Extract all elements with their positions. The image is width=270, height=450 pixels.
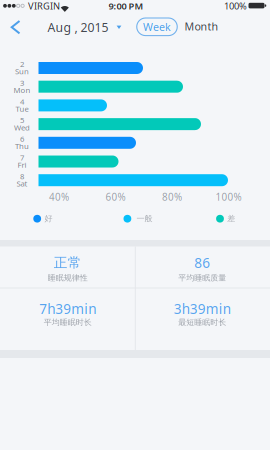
staticText: 40% <box>49 190 69 204</box>
staticText: 6 <box>20 133 24 144</box>
staticText: 3 <box>20 77 24 88</box>
staticText: 7h39min <box>39 299 96 318</box>
staticText: 7 <box>20 152 24 163</box>
staticText: 最短睡眠时长 <box>178 317 226 327</box>
staticText: 正常 <box>54 254 82 271</box>
staticText: 差 <box>227 213 235 224</box>
staticText: 80% <box>162 190 182 204</box>
staticText: VIRGIN <box>28 0 60 12</box>
staticText: 5 <box>20 115 24 125</box>
staticText: 平均睡眠时长 <box>44 317 92 327</box>
staticText: 一般 <box>136 213 152 224</box>
staticText: 平均睡眠质量 <box>178 273 226 283</box>
staticText: Fri <box>17 159 26 170</box>
staticText: 60% <box>105 190 125 204</box>
staticText: 4 <box>20 96 24 107</box>
staticText: 9:00 PM <box>108 0 143 12</box>
staticText: Tue <box>15 103 28 114</box>
staticText: Aug , 2015 <box>48 19 109 36</box>
staticText: Sun <box>15 66 29 76</box>
button[interactable] <box>5 17 25 37</box>
staticText: Mon <box>13 85 30 95</box>
staticText: Week <box>143 19 171 34</box>
staticText: 2 <box>20 59 24 69</box>
button[interactable]: Month <box>184 19 218 34</box>
staticText: Sat <box>16 178 27 189</box>
staticText: 好 <box>44 213 52 224</box>
staticText: 100% <box>224 0 247 12</box>
staticText: 睡眠规律性 <box>48 273 88 283</box>
staticText: 86 <box>194 253 210 272</box>
button[interactable]: Week <box>137 18 177 36</box>
staticText: 3h39min <box>174 299 231 318</box>
staticText: Month <box>184 19 218 34</box>
staticText: 8 <box>20 171 24 181</box>
button[interactable]: Aug , 2015 <box>48 19 121 36</box>
staticText: Thu <box>15 141 29 151</box>
staticText: Wed <box>14 122 30 133</box>
staticText: 100% <box>215 190 241 204</box>
